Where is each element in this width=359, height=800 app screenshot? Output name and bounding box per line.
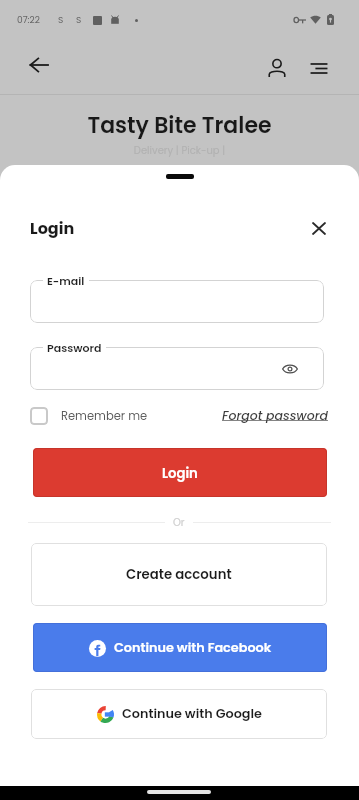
staticText: Create account [126, 565, 232, 584]
button[interactable]: Menu [305, 54, 333, 82]
staticText: S [58, 14, 64, 27]
staticText: Remember me [61, 408, 148, 424]
button[interactable]: Login [33, 448, 327, 497]
button[interactable]: Back [25, 51, 53, 79]
staticText: Or [173, 515, 185, 529]
staticText: Delivery | Pick-up | [0, 143, 359, 157]
button[interactable]: Continue with Facebook [33, 623, 327, 672]
button[interactable]: Account [263, 54, 291, 82]
staticText: Continue with Google [122, 705, 262, 723]
staticText: 07:22 [17, 14, 40, 27]
staticText: Login [30, 217, 75, 239]
staticText: S [76, 14, 82, 27]
button[interactable]: Show password [277, 356, 303, 382]
button[interactable]: Create account [31, 543, 327, 606]
staticText: E-mail [47, 273, 85, 288]
button[interactable]: Remember me [30, 407, 148, 425]
staticText: Continue with Facebook [114, 639, 272, 657]
staticText: Password [47, 340, 102, 355]
button[interactable]: Close [305, 214, 333, 242]
staticText: Tasty Bite Tralee [0, 110, 359, 141]
button[interactable]: Continue with Google [31, 689, 327, 739]
staticText: Login [162, 464, 198, 482]
button[interactable]: Forgot password [222, 407, 328, 424]
